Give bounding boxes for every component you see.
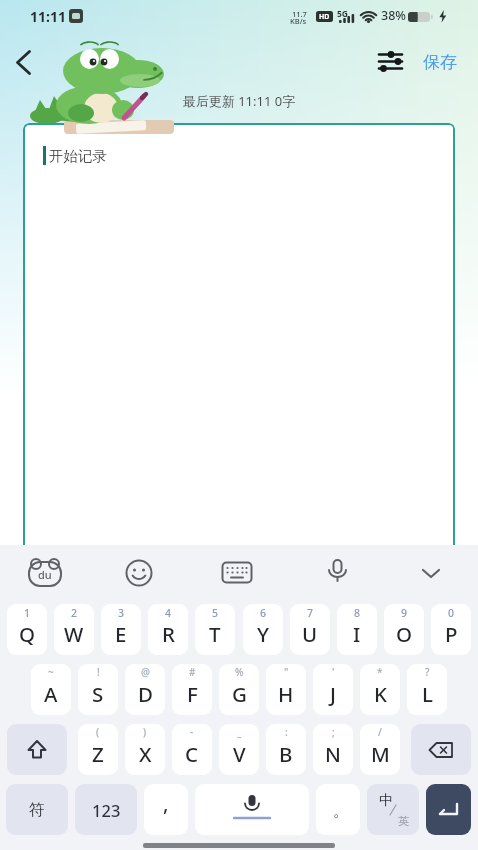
staticText: #	[189, 665, 196, 679]
button[interactable]	[411, 724, 471, 775]
staticText: 保存	[423, 52, 457, 73]
staticText: %	[235, 665, 244, 679]
staticText: du	[38, 567, 52, 582]
staticText: HD	[319, 12, 330, 22]
staticText: (	[96, 725, 100, 739]
staticText: 最后更新 11:11 0字	[0, 92, 478, 110]
staticText: T	[209, 620, 221, 648]
button[interactable]: 符	[6, 784, 68, 835]
button[interactable]	[8, 46, 44, 82]
button[interactable]: 6	[243, 604, 283, 655]
staticText: @	[141, 665, 150, 679]
staticText: 3	[118, 606, 125, 620]
staticText: S	[92, 680, 104, 708]
button[interactable]: *	[360, 664, 400, 715]
button[interactable]: 123	[75, 784, 137, 835]
staticText: 8	[354, 606, 361, 620]
staticText: O	[396, 620, 413, 648]
staticText: G	[232, 680, 247, 708]
button[interactable]: #	[172, 664, 212, 715]
button[interactable]: 3	[101, 604, 141, 655]
button[interactable]: 4	[148, 604, 188, 655]
staticText: M	[371, 740, 390, 768]
staticText: 38%	[381, 7, 406, 24]
staticText: 4	[165, 606, 172, 620]
button[interactable]: ~	[31, 664, 71, 715]
button[interactable]: %	[219, 664, 259, 715]
button[interactable]: 8	[337, 604, 377, 655]
staticText: 2	[71, 606, 78, 620]
staticText: 11:11	[30, 7, 66, 26]
staticText: )	[143, 725, 147, 739]
button[interactable]: :	[266, 724, 306, 775]
button[interactable]	[124, 559, 154, 589]
staticText: X	[139, 740, 152, 768]
button[interactable]: ,	[144, 784, 188, 835]
staticText: W	[64, 620, 84, 648]
staticText: ;	[332, 725, 335, 739]
staticText: Y	[257, 620, 269, 648]
button[interactable]	[7, 724, 67, 775]
button[interactable]: ?	[407, 664, 447, 715]
staticText: /	[378, 725, 382, 739]
button[interactable]: 9	[384, 604, 424, 655]
button[interactable]: 1	[7, 604, 47, 655]
staticText: A	[44, 680, 58, 708]
staticText: E	[115, 620, 127, 648]
staticText: U	[302, 620, 318, 648]
staticText: _	[237, 725, 242, 739]
staticText: 符	[29, 800, 45, 820]
staticText: 7	[307, 606, 314, 620]
staticText: P	[445, 620, 458, 648]
staticText: -	[190, 725, 194, 739]
staticText: !	[97, 665, 100, 679]
button[interactable]	[426, 784, 471, 835]
button[interactable]: 保存	[412, 46, 468, 78]
button[interactable]: 。	[316, 784, 360, 835]
staticText: ~	[48, 665, 54, 679]
button[interactable]	[221, 561, 254, 586]
staticText: I	[353, 620, 361, 648]
button[interactable]	[374, 48, 406, 76]
button[interactable]: @	[125, 664, 165, 715]
button[interactable]: _	[219, 724, 259, 775]
staticText: N	[325, 740, 341, 768]
button[interactable]: 2	[54, 604, 94, 655]
button[interactable]: 0	[431, 604, 471, 655]
staticText: 6	[260, 606, 267, 620]
staticText: *	[377, 665, 383, 679]
staticText: Z	[92, 740, 104, 768]
button[interactable]: -	[172, 724, 212, 775]
staticText: H	[278, 680, 294, 708]
button[interactable]	[416, 563, 446, 585]
button[interactable]: !	[78, 664, 118, 715]
button[interactable]: '	[313, 664, 353, 715]
staticText: F	[187, 680, 198, 708]
button[interactable]: )	[125, 724, 165, 775]
button[interactable]: 中	[367, 784, 419, 835]
button[interactable]: ;	[313, 724, 353, 775]
staticText: L	[422, 680, 433, 708]
staticText: "	[284, 665, 289, 679]
staticText: '	[332, 665, 335, 679]
staticText: 1	[24, 606, 31, 620]
staticText: Q	[19, 620, 36, 648]
button[interactable]	[324, 558, 351, 589]
button[interactable]: 7	[290, 604, 330, 655]
staticText: 11.7	[292, 9, 307, 19]
button[interactable]: du	[26, 557, 64, 589]
staticText: 5G	[337, 8, 349, 20]
staticText: R	[162, 620, 175, 648]
button[interactable]: 5	[195, 604, 235, 655]
button[interactable]: (	[78, 724, 118, 775]
button[interactable]: "	[266, 664, 306, 715]
button[interactable]	[195, 784, 309, 835]
staticText: J	[330, 680, 336, 708]
button[interactable]: /	[360, 724, 400, 775]
staticText: 。	[333, 802, 348, 821]
staticText: 123	[92, 799, 121, 821]
button[interactable]: 开始记录	[23, 123, 455, 850]
staticText: 9	[401, 606, 408, 620]
staticText: B	[279, 740, 293, 768]
staticText: V	[233, 740, 246, 768]
